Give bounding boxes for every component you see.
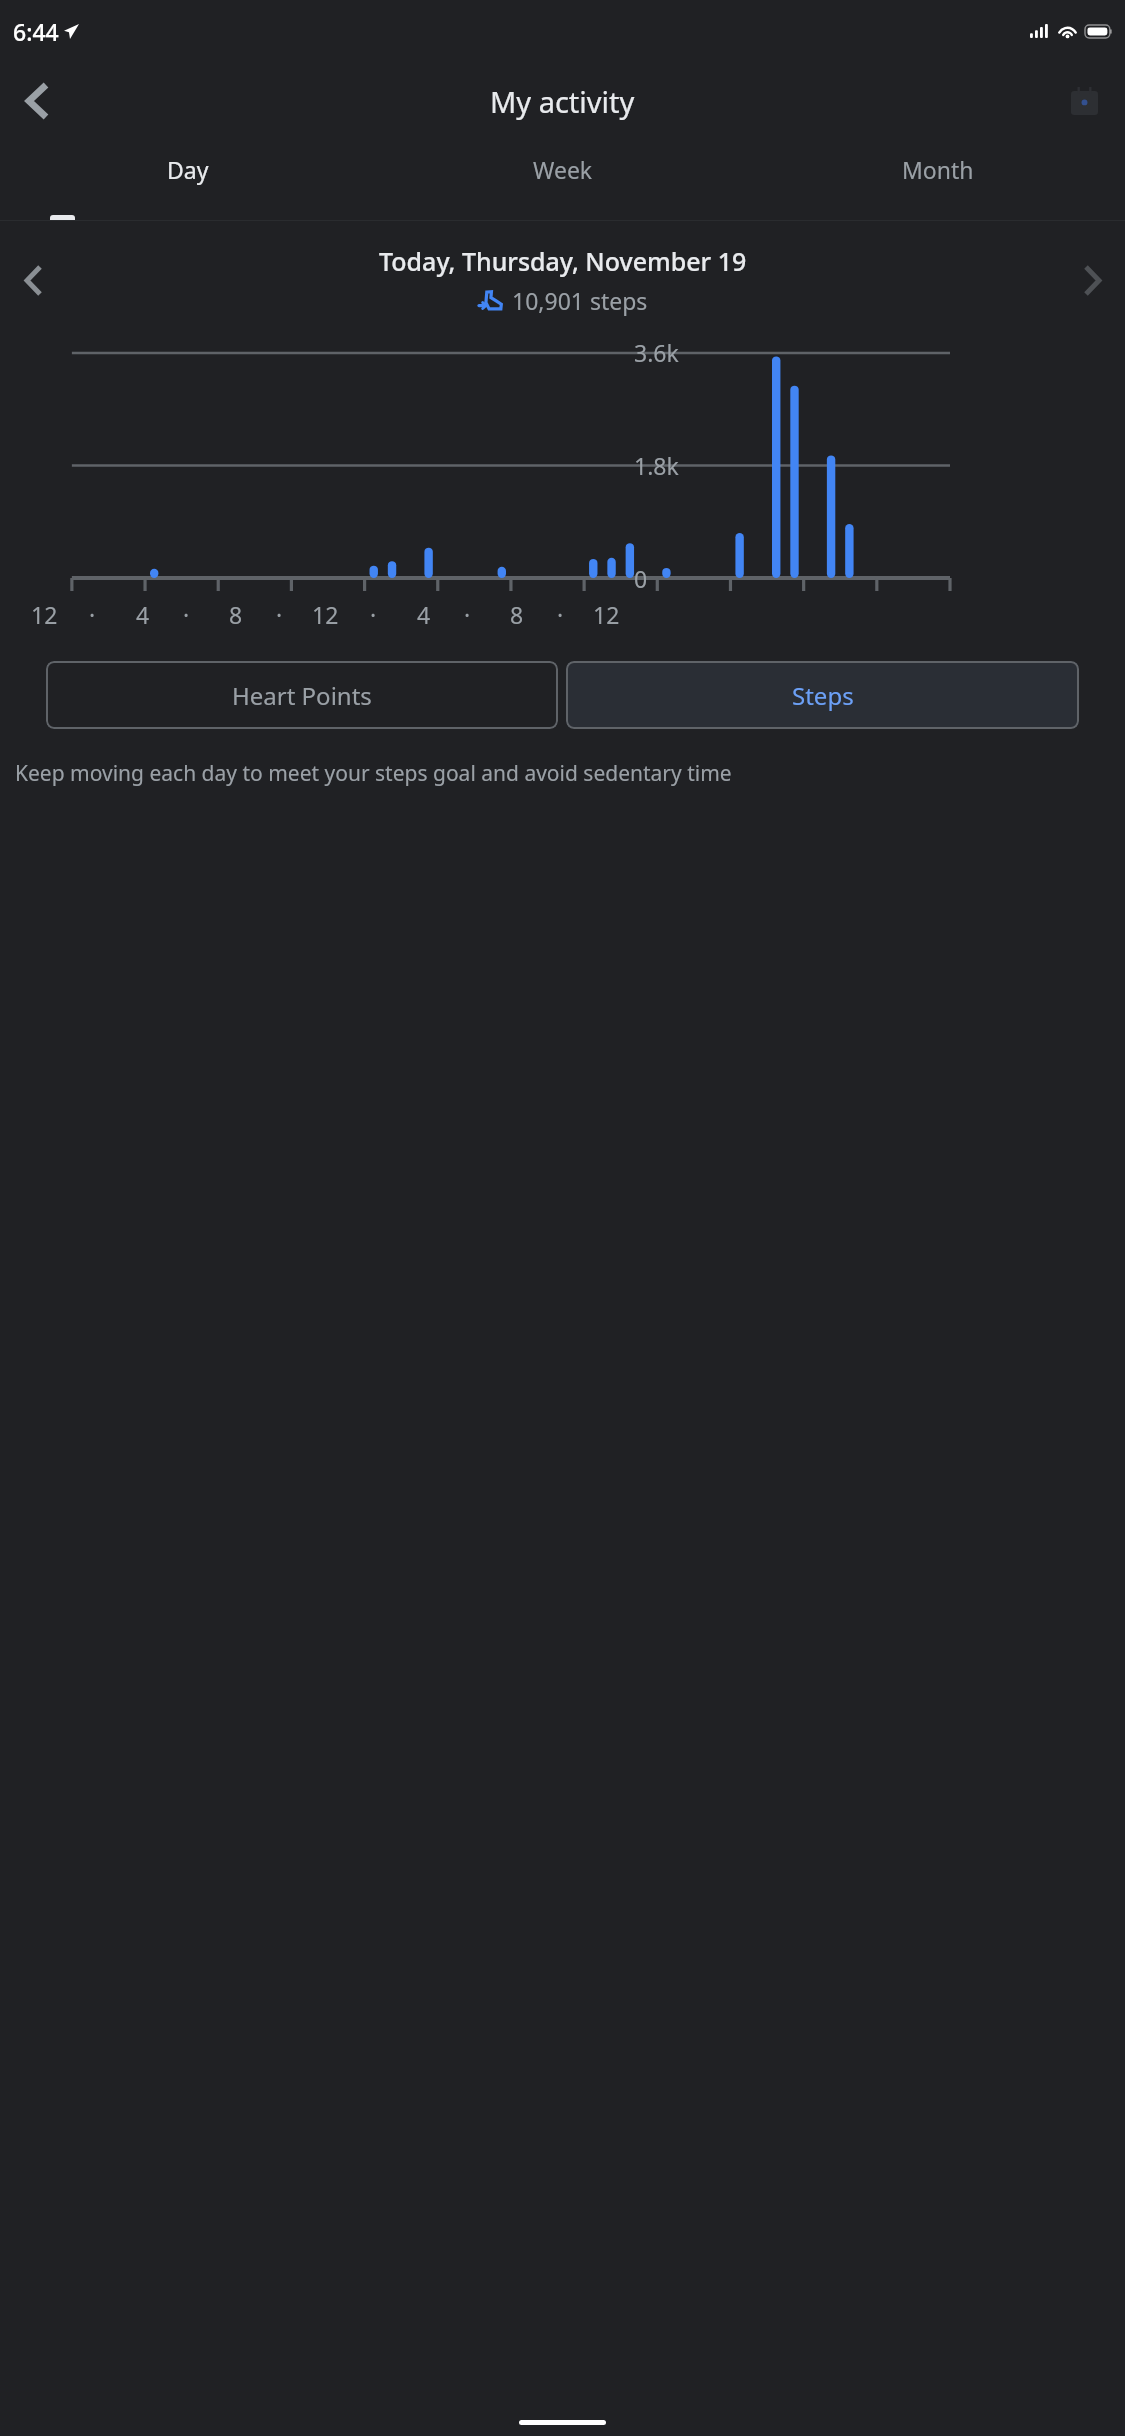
button[interactable]: Back	[8, 72, 66, 130]
staticText: 0	[634, 563, 648, 594]
staticText: Keep moving each day to meet your steps …	[15, 759, 732, 788]
staticText: Heart Points	[232, 679, 372, 712]
staticText: 10,901 steps	[512, 285, 648, 316]
button[interactable]: Steps	[566, 661, 1079, 729]
staticText: ·	[464, 599, 471, 630]
staticText: Week	[533, 154, 593, 185]
staticText: ·	[370, 599, 377, 630]
staticText: 6:44	[13, 16, 59, 47]
staticText: Today, Thursday, November 19	[379, 244, 747, 278]
staticText: 12	[593, 599, 620, 630]
staticText: ·	[89, 599, 96, 630]
button[interactable]: Next day	[1064, 252, 1120, 308]
staticText: 4	[417, 599, 431, 630]
staticText: ·	[183, 599, 190, 630]
button[interactable]: Previous day	[5, 252, 61, 308]
button[interactable]: Calendar	[1057, 74, 1111, 128]
staticText: 8	[229, 599, 243, 630]
button[interactable]: Month	[750, 140, 1125, 220]
staticText: ·	[276, 599, 283, 630]
button[interactable]: Heart Points	[46, 661, 558, 729]
staticText: 1.8k	[634, 450, 679, 481]
staticText: Day	[167, 154, 209, 185]
button[interactable]: Week	[375, 140, 750, 220]
staticText: 12	[312, 599, 339, 630]
button[interactable]: Day	[0, 140, 375, 220]
staticText: 8	[510, 599, 524, 630]
staticText: 4	[136, 599, 150, 630]
staticText: 3.6k	[634, 337, 679, 368]
staticText: My activity	[490, 82, 635, 121]
staticText: 12	[31, 599, 58, 630]
staticText: Month	[902, 154, 974, 185]
staticText: ·	[557, 599, 564, 630]
staticText: Steps	[792, 679, 854, 712]
